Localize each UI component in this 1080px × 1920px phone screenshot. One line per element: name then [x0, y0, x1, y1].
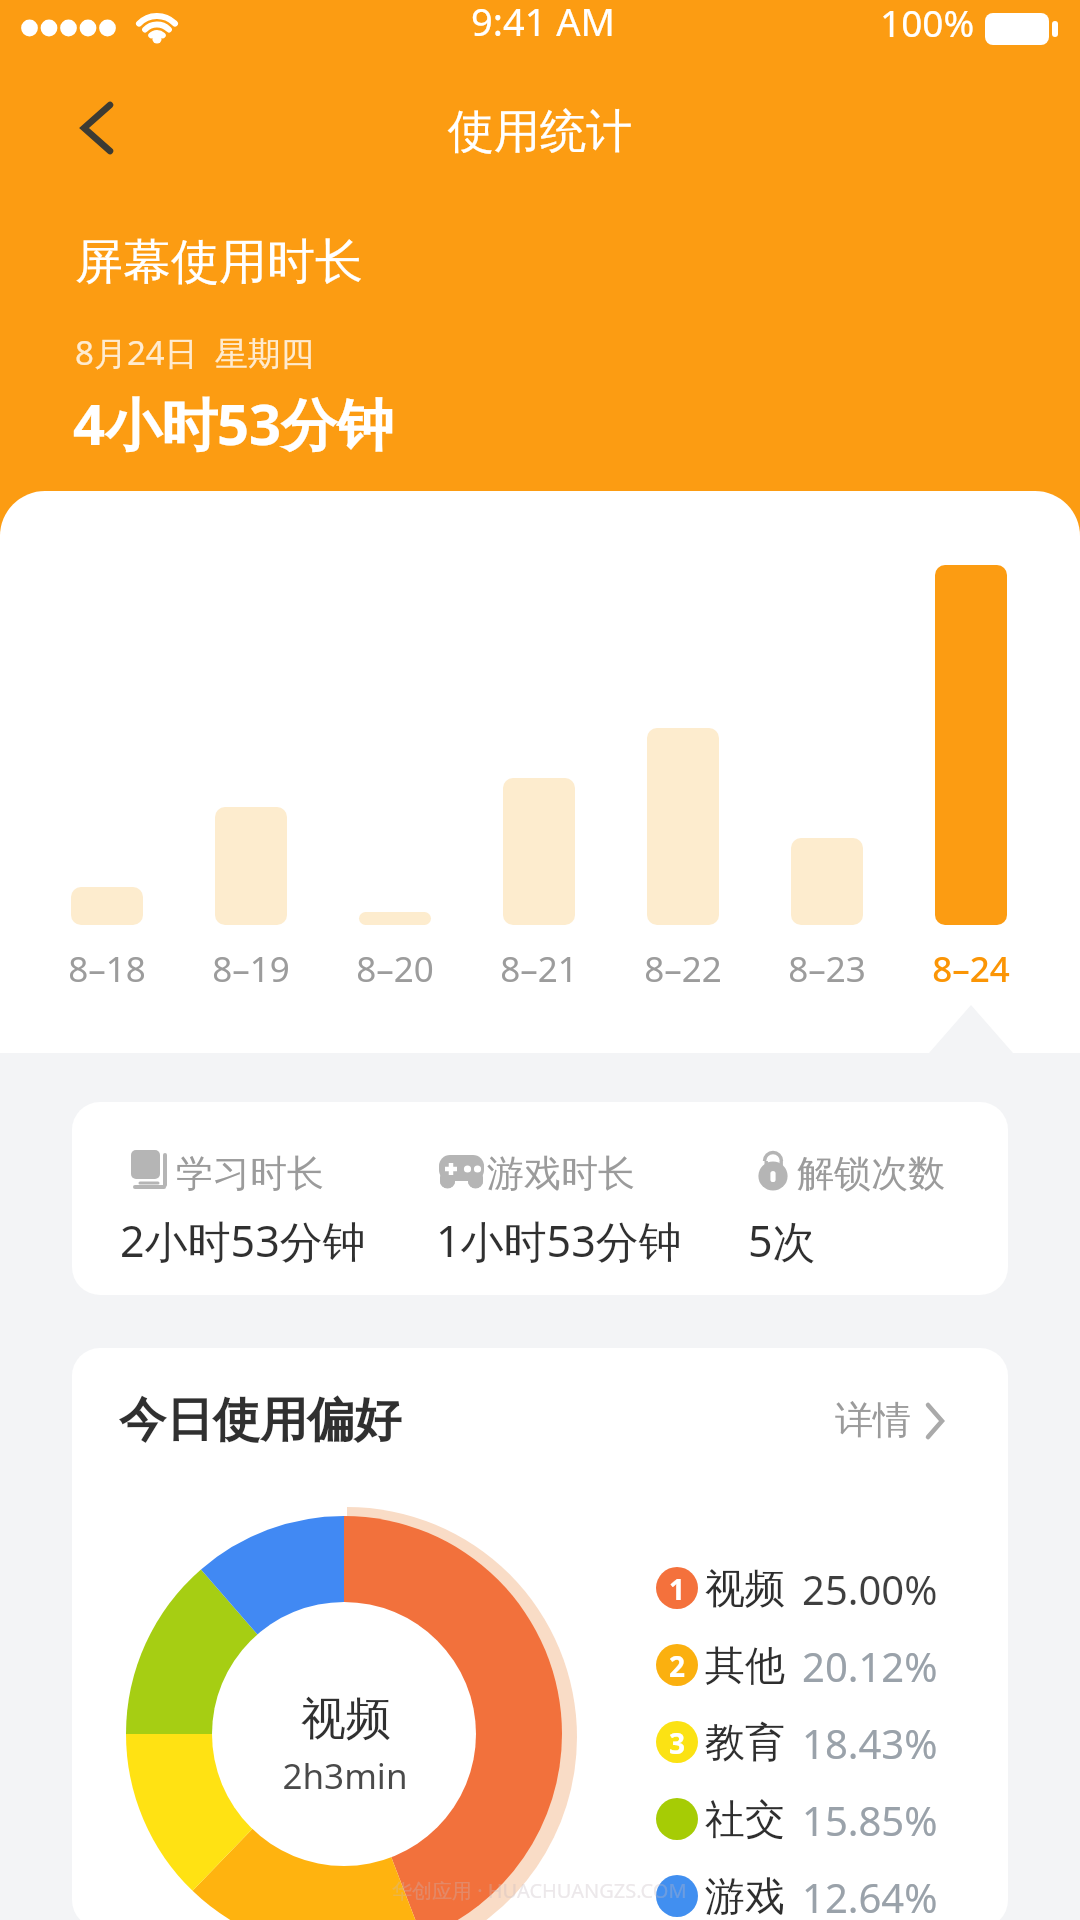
staticText: 2	[647, 1647, 707, 1685]
staticText: 25.00%	[802, 1562, 938, 1616]
staticText: 8–24	[891, 945, 1051, 993]
staticText: 社交	[705, 1794, 785, 1844]
staticText: 8–19	[171, 945, 331, 993]
staticText: 今日使用偏好	[119, 1391, 401, 1450]
staticText: 1小时53分钟	[436, 1211, 682, 1270]
staticText: 学习时长	[176, 1150, 324, 1197]
staticText: 使用统计	[340, 103, 740, 161]
staticText: 15.85%	[802, 1793, 938, 1847]
staticText: 视频	[705, 1563, 785, 1613]
staticText: 100%	[880, 0, 975, 47]
staticText: 1	[647, 1570, 707, 1608]
staticText: 4小时53分钟	[73, 385, 394, 461]
staticText: 20.12%	[802, 1639, 938, 1693]
staticText: 游戏	[705, 1871, 785, 1920]
staticText: 8–18	[27, 945, 187, 993]
staticText: 屏幕使用时长	[75, 232, 363, 292]
staticText: 8–22	[603, 945, 763, 993]
staticText: 解锁次数	[797, 1150, 945, 1197]
staticText: 3	[647, 1724, 707, 1762]
staticText: 9:41 AM	[393, 0, 693, 47]
staticText: 视频	[146, 1691, 546, 1748]
staticText: 华创应用 · HUACHUANGZS.COM	[392, 1877, 687, 1904]
staticText: 8–21	[459, 945, 619, 993]
staticText: 12.64%	[802, 1870, 938, 1920]
staticText: 教育	[705, 1717, 785, 1767]
staticText: 其他	[705, 1640, 785, 1690]
button[interactable]	[60, 90, 136, 166]
staticText: 8月24日 星期四	[75, 330, 314, 375]
staticText: 2h3min	[145, 1752, 545, 1800]
staticText: 2小时53分钟	[120, 1211, 366, 1270]
staticText: 详情	[835, 1396, 911, 1444]
staticText: 18.43%	[802, 1716, 938, 1770]
button[interactable]: 详情	[820, 1385, 970, 1455]
staticText: 游戏时长	[487, 1150, 635, 1197]
staticText: 8–23	[747, 945, 907, 993]
staticText: 8–20	[315, 945, 475, 993]
staticText: 5次	[748, 1211, 816, 1270]
